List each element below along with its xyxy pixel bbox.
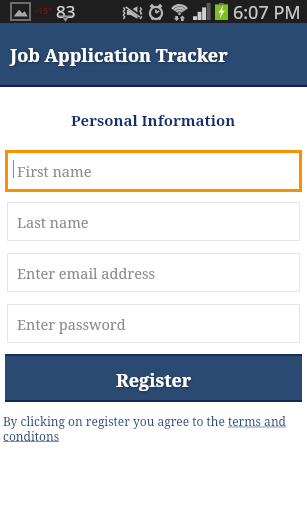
staticText: Enter password (17, 314, 126, 334)
button[interactable]: Register (5, 354, 302, 402)
staticText: -15° (35, 4, 52, 16)
other: Screenshot captured (11, 3, 30, 20)
staticText: Last name (17, 212, 89, 232)
other: Alarm set (148, 4, 164, 20)
button[interactable]: Last name (7, 202, 300, 241)
button[interactable]: First name (5, 150, 302, 192)
other: Battery charging (215, 3, 228, 20)
button[interactable]: Enter password (7, 304, 300, 343)
staticText: Enter email address (17, 263, 156, 283)
staticText: 6:07 PM (233, 0, 301, 23)
button[interactable]: By clicking on register you agree to the… (3, 413, 304, 444)
staticText: By clicking on register you agree to the… (3, 413, 304, 444)
other: Wi-Fi connected (170, 3, 189, 20)
staticText: Personal Information (71, 110, 236, 130)
staticText: Register (116, 368, 192, 393)
staticText: First name (17, 161, 92, 181)
staticText: 83 (56, 0, 76, 23)
other: Cellular signal (193, 3, 211, 20)
staticText: Job Application Tracker (10, 43, 228, 68)
button[interactable]: Enter email address (7, 253, 300, 292)
other: Ringer muted (123, 6, 142, 19)
